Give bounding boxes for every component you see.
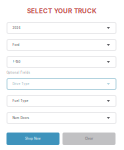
button[interactable]: Ford bbox=[6, 39, 116, 51]
staticText: F-150 bbox=[12, 60, 20, 64]
staticText: Ford bbox=[12, 43, 19, 47]
staticText: Drive Type bbox=[12, 82, 29, 86]
staticText: 2024 bbox=[12, 26, 20, 30]
button[interactable]: Shop Now bbox=[6, 132, 59, 145]
staticText: Num Doors bbox=[12, 116, 29, 120]
button[interactable]: F-150 bbox=[6, 56, 116, 68]
staticText: Shop Now bbox=[25, 137, 41, 141]
button[interactable]: Clear bbox=[62, 132, 115, 145]
staticText: Optional Fields bbox=[6, 71, 29, 74]
button[interactable]: Num Doors bbox=[6, 112, 116, 124]
staticText: SELECT YOUR TRUCK bbox=[27, 7, 97, 15]
button[interactable]: Drive Type bbox=[6, 78, 116, 90]
staticText: Clear bbox=[85, 137, 93, 141]
button[interactable]: 2024 bbox=[6, 22, 116, 34]
button[interactable]: Fuel Type bbox=[6, 95, 116, 107]
staticText: Fuel Type bbox=[12, 99, 28, 103]
